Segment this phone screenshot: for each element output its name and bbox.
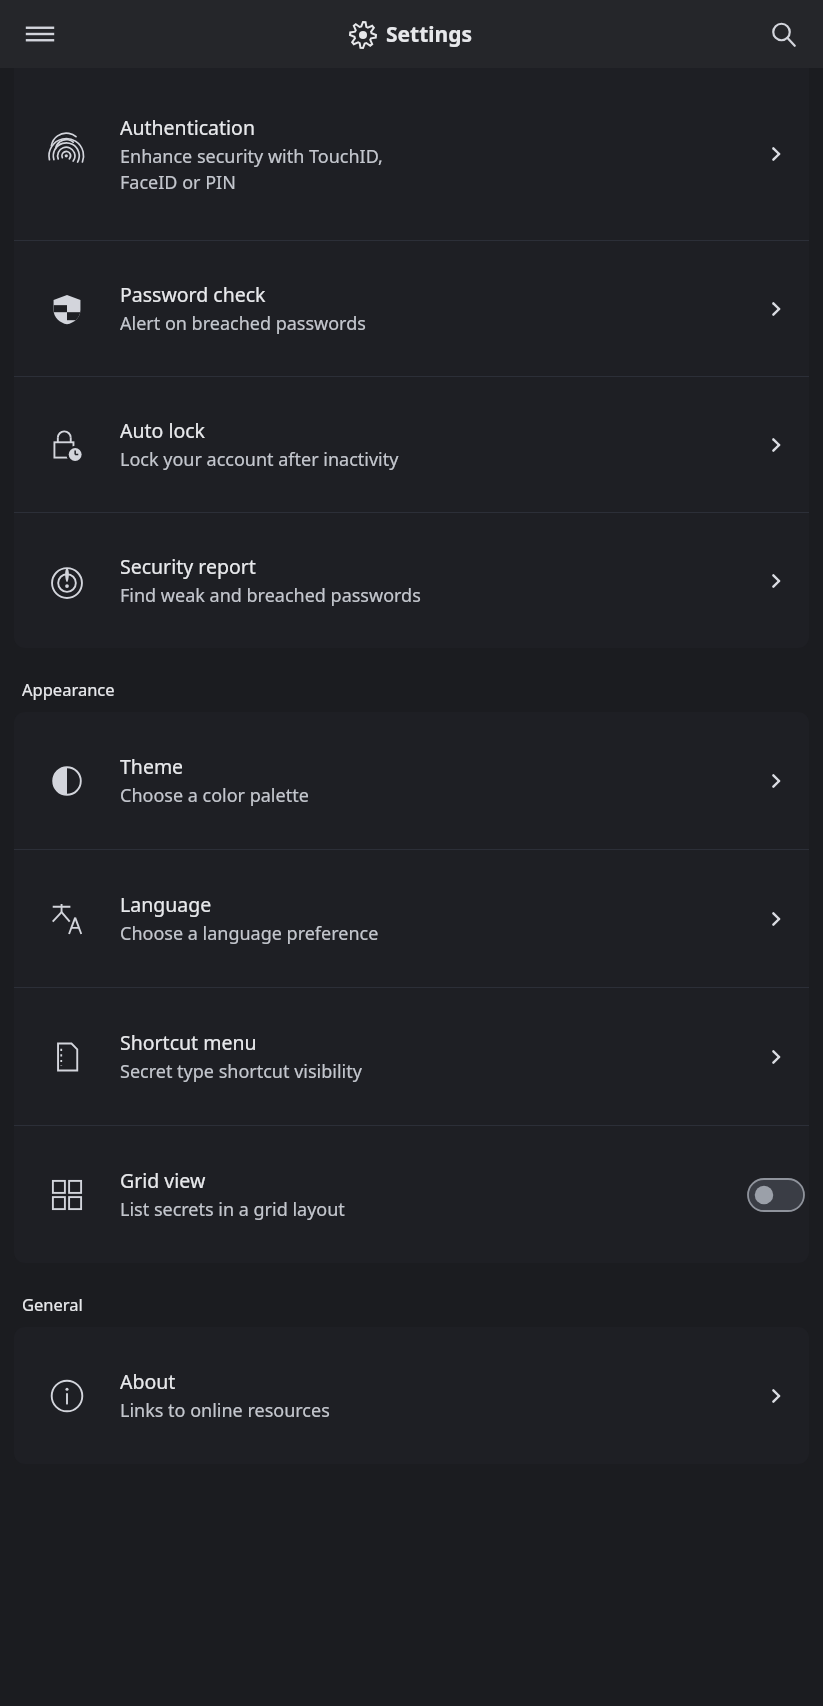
button[interactable]: Security report xyxy=(14,513,809,648)
staticText: Find weak and breached passwords xyxy=(120,583,421,608)
staticText: Shortcut menu xyxy=(120,1029,257,1056)
button[interactable]: Theme xyxy=(14,712,809,849)
staticText: Links to online resources xyxy=(120,1398,330,1423)
staticText: General xyxy=(22,1293,83,1315)
button[interactable]: Shortcut menu xyxy=(14,988,809,1125)
button[interactable]: Auto lock xyxy=(14,377,809,512)
button[interactable]: Language xyxy=(14,850,809,987)
staticText: Theme xyxy=(120,753,184,780)
button[interactable]: About xyxy=(14,1327,809,1464)
staticText: Choose a color palette xyxy=(120,783,309,808)
staticText: Auto lock xyxy=(120,417,206,444)
staticText: Enhance security with TouchID, FaceID or… xyxy=(120,144,383,195)
button[interactable]: Grid view toggle, off xyxy=(748,1179,804,1211)
staticText: List secrets in a grid layout xyxy=(120,1197,345,1222)
staticText: Choose a language preference xyxy=(120,921,379,946)
staticText: Alert on breached passwords xyxy=(120,311,366,336)
staticText: Secret type shortcut visibility xyxy=(120,1059,362,1084)
staticText: Grid view xyxy=(120,1167,206,1194)
staticText: Password check xyxy=(120,281,266,308)
button[interactable]: Grid view xyxy=(14,1126,809,1263)
staticText: Settings xyxy=(386,20,473,49)
staticText: About xyxy=(120,1368,176,1395)
staticText: Security report xyxy=(120,553,256,580)
staticText: Lock your account after inactivity xyxy=(120,447,399,472)
button[interactable]: Search xyxy=(759,10,807,58)
button[interactable]: Password check xyxy=(14,241,809,376)
button[interactable]: Open navigation menu xyxy=(16,10,64,58)
staticText: Language xyxy=(120,891,212,918)
staticText: Authentication xyxy=(120,114,255,141)
staticText: Appearance xyxy=(22,678,115,700)
button[interactable]: Authentication xyxy=(14,68,809,240)
